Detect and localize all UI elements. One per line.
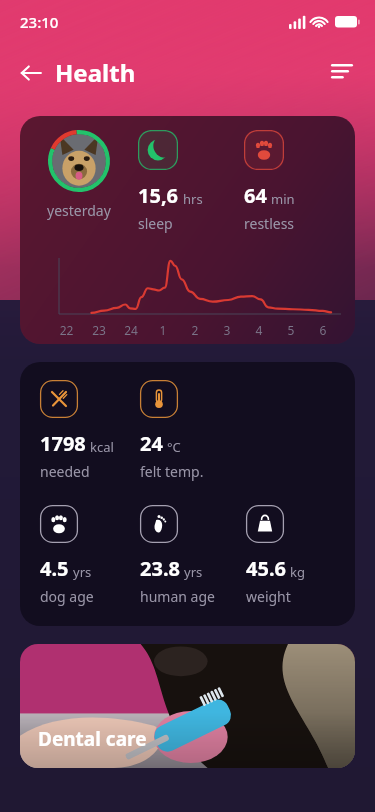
staticText: yrs (184, 563, 203, 581)
staticText: sleep (138, 214, 173, 233)
staticText: 23:10 (20, 12, 59, 32)
staticText: °C (167, 438, 181, 456)
staticText: yrs (73, 563, 92, 581)
staticText: 5 (275, 322, 307, 338)
staticText: 4.5 (40, 555, 69, 582)
staticText: 4 (243, 322, 275, 338)
staticText: 45.6 (246, 555, 286, 582)
staticText: 2 (179, 322, 211, 338)
staticText: felt temp. (140, 462, 204, 481)
staticText: 3 (211, 322, 243, 338)
staticText: 24 (115, 322, 147, 338)
button[interactable]: Menu (323, 56, 361, 88)
staticText: weight (246, 587, 291, 606)
staticText: restless (244, 214, 295, 233)
staticText: Dental care (38, 726, 147, 752)
other: Back (20, 62, 42, 84)
staticText: yesterday (47, 201, 111, 220)
staticText: min (271, 190, 295, 208)
staticText: human age (140, 587, 215, 606)
staticText: 24 (140, 430, 163, 457)
staticText: dog age (40, 587, 94, 606)
button[interactable]: 1798 (20, 362, 355, 626)
staticText: 23.8 (140, 555, 180, 582)
staticText: 6 (307, 322, 339, 338)
staticText: 1798 (40, 430, 86, 457)
staticText: 15,6 (138, 182, 179, 209)
staticText: 64 (244, 182, 267, 209)
staticText: Health (55, 56, 136, 89)
staticText: needed (40, 462, 90, 481)
button[interactable]: Dental care (20, 644, 355, 768)
staticText: 22 (50, 322, 83, 338)
button[interactable]: Back (12, 50, 144, 95)
staticText: 23 (83, 322, 115, 338)
staticText: kg (290, 563, 305, 581)
staticText: hrs (183, 190, 203, 208)
staticText: 1 (147, 322, 179, 338)
button[interactable]: yesterday (20, 116, 355, 344)
staticText: kcal (90, 438, 114, 456)
